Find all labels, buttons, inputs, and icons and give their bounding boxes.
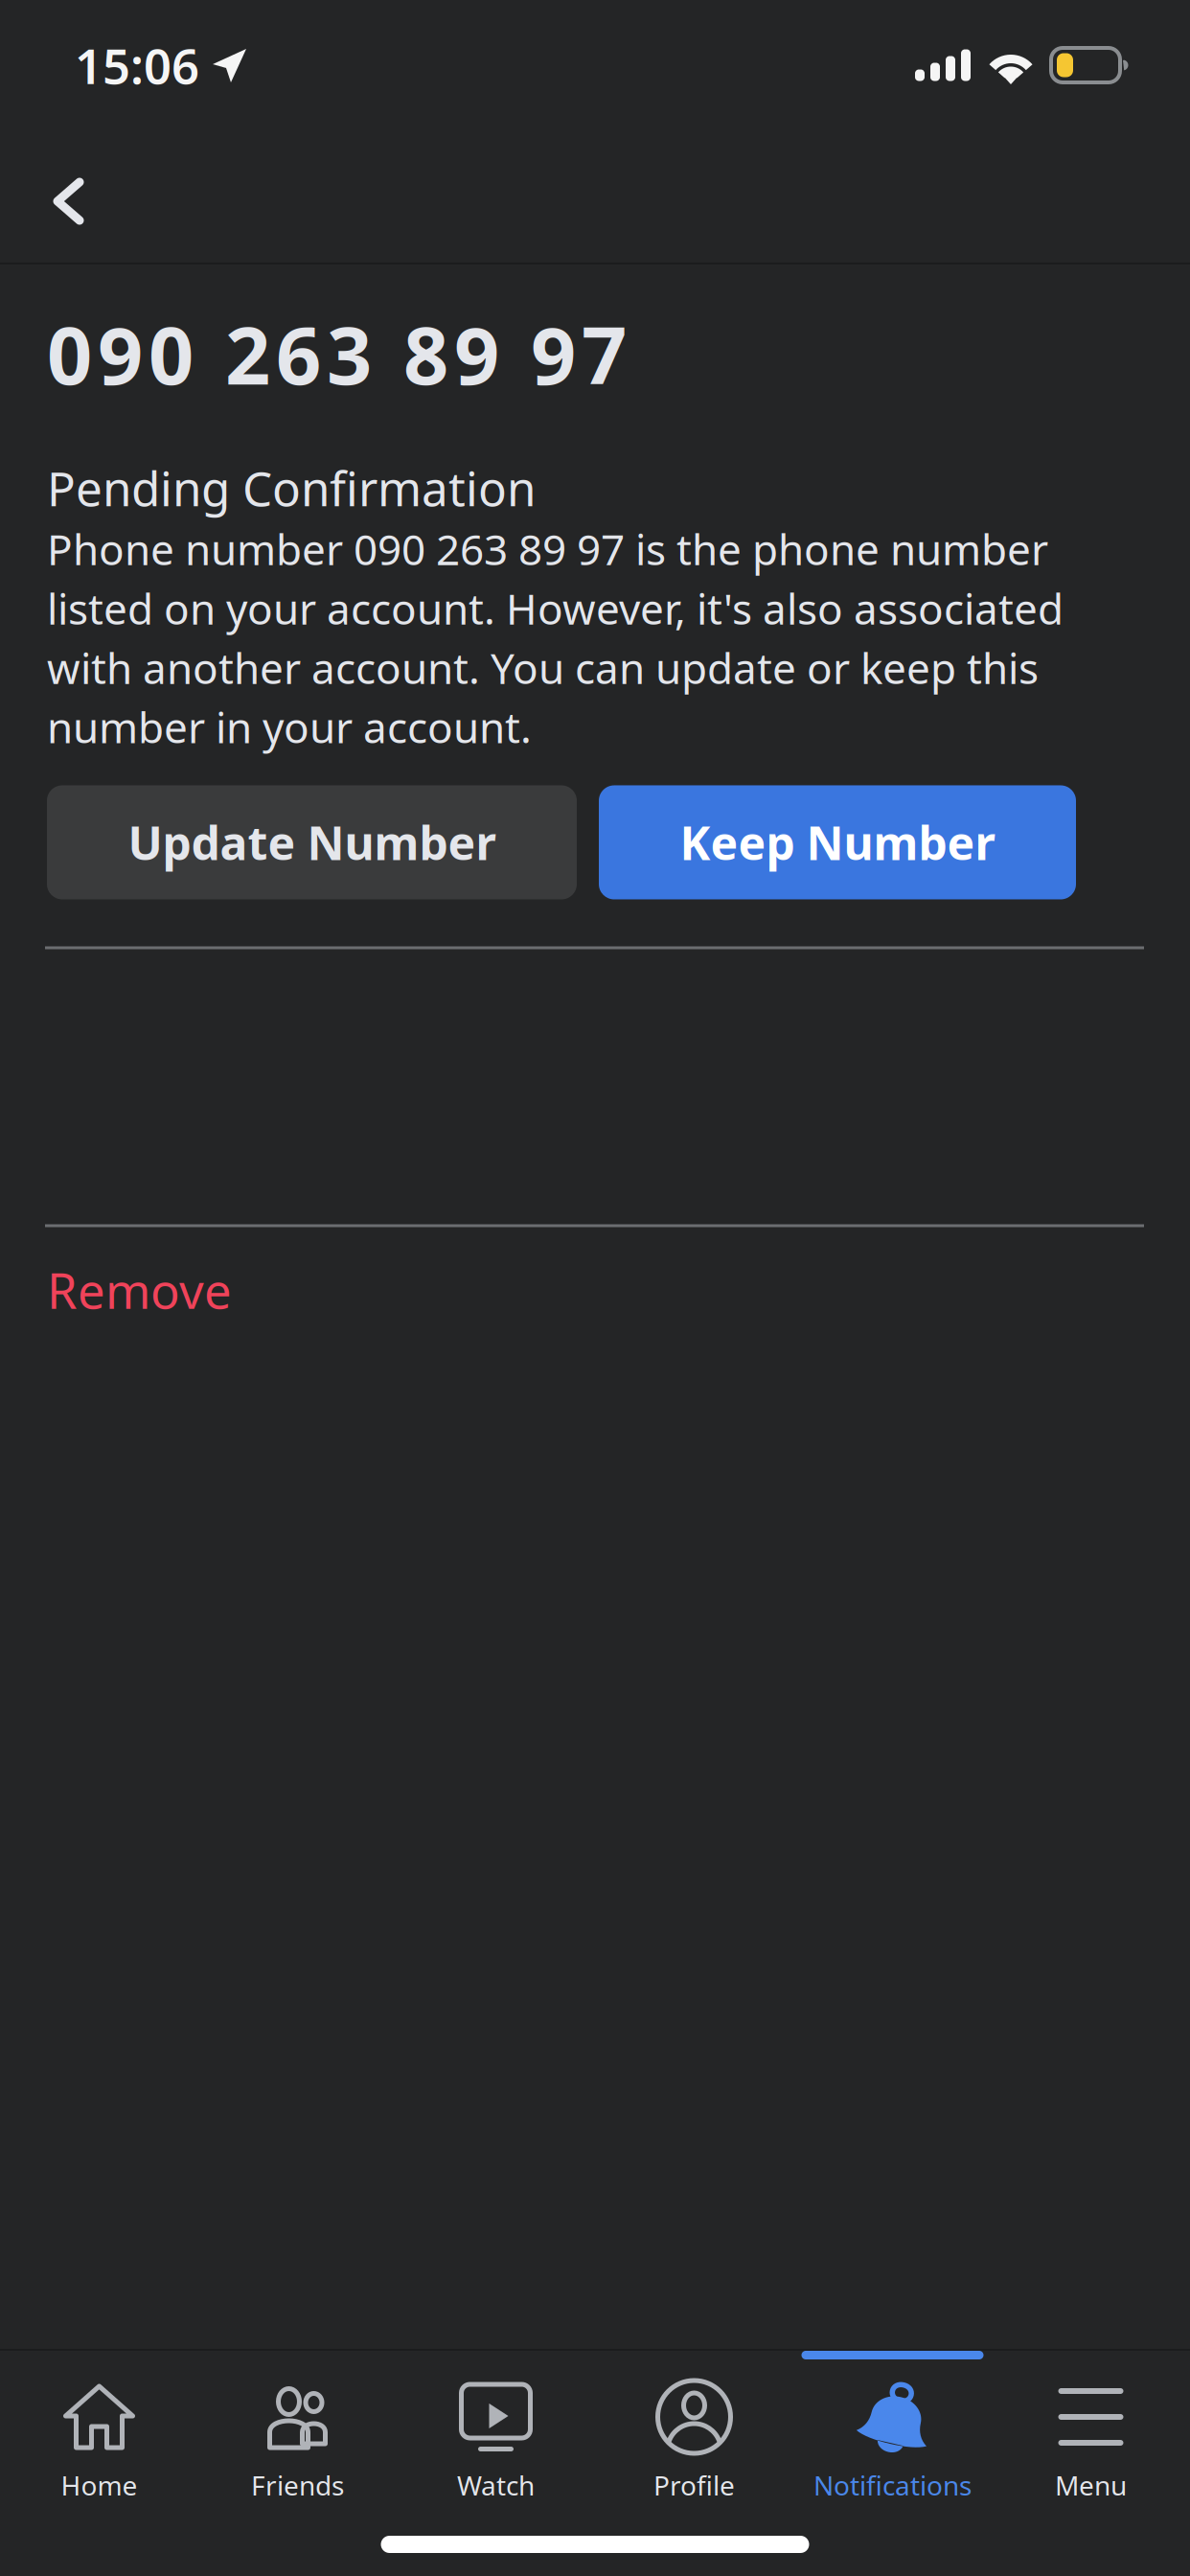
button[interactable]: Remove — [47, 1227, 232, 1334]
staticText: Profile — [653, 2467, 735, 2503]
button[interactable]: Friends — [198, 2351, 397, 2521]
button[interactable]: Profile — [595, 2351, 793, 2521]
staticText: Keep Number — [680, 811, 995, 874]
button[interactable]: Menu — [992, 2351, 1190, 2521]
button[interactable]: Notifications — [793, 2351, 992, 2521]
button[interactable]: Keep Number — [599, 785, 1076, 899]
staticText: Update Number — [128, 811, 496, 874]
staticText: Friends — [251, 2467, 344, 2503]
staticText: Phone number 090 263 89 97 is the phone … — [47, 520, 1064, 756]
button[interactable]: Watch — [397, 2351, 595, 2521]
staticText: 15:06 — [75, 32, 199, 98]
staticText: Home — [61, 2467, 137, 2503]
staticText: Pending Confirmation — [47, 456, 536, 520]
button[interactable]: Home — [0, 2351, 198, 2521]
staticText: Remove — [47, 1257, 232, 1323]
button[interactable]: Back — [0, 130, 125, 263]
staticText: 090 263 89 97 — [47, 300, 627, 408]
staticText: Watch — [457, 2467, 535, 2503]
button[interactable]: Update Number — [47, 785, 577, 899]
staticText: Notifications — [813, 2467, 972, 2503]
staticText: Menu — [1055, 2467, 1127, 2503]
